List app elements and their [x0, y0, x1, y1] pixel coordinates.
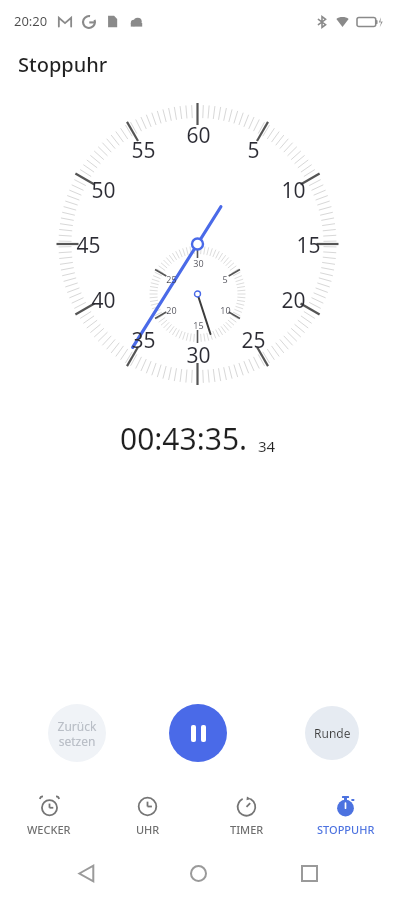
staticText: 15 [193, 319, 204, 331]
staticText: 30 [193, 257, 204, 269]
staticText: 50 [91, 176, 116, 205]
staticText: 10 [220, 304, 231, 316]
staticText: TIMER [230, 822, 264, 837]
button[interactable]: Back [70, 857, 102, 889]
button[interactable]: WECKER [0, 787, 98, 845]
staticText: 25 [241, 326, 266, 355]
staticText: 35 [131, 326, 156, 355]
staticText: 10 [281, 176, 306, 205]
staticText: 5 [247, 136, 260, 165]
button[interactable]: Home [182, 857, 214, 889]
button[interactable]: Pause [169, 704, 227, 762]
staticText: 45 [76, 231, 101, 260]
staticText: WECKER [27, 822, 71, 837]
staticText: STOPPUHR [317, 822, 375, 837]
button[interactable]: Recent apps [293, 857, 325, 889]
staticText: 55 [131, 136, 156, 165]
staticText: Stoppuhr [18, 51, 108, 78]
staticText: 30 [186, 341, 211, 370]
button[interactable]: TIMER [197, 787, 296, 845]
staticText: Runde [314, 725, 351, 741]
staticText: 00:43:35. [120, 418, 248, 459]
staticText: 34 [258, 436, 276, 456]
staticText: 20 [281, 286, 306, 315]
staticText: 20 [166, 304, 177, 316]
button[interactable]: Runde [305, 706, 359, 760]
staticText: 15 [296, 231, 321, 260]
staticText: 25 [166, 273, 177, 285]
button[interactable]: UHR [98, 787, 197, 845]
staticText: 60 [186, 121, 211, 150]
button[interactable]: Zurück setzen [48, 704, 106, 762]
staticText: Zurück setzen [48, 718, 106, 749]
staticText: 20:20 [14, 12, 48, 30]
button[interactable]: STOPPUHR [296, 787, 395, 845]
staticText: UHR [136, 822, 160, 837]
staticText: 5 [222, 273, 228, 285]
staticText: 40 [91, 286, 116, 315]
